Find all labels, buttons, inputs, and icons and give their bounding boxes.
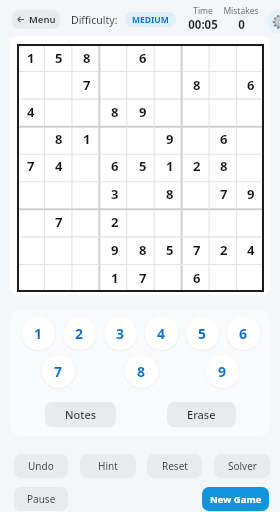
button[interactable]	[129, 180, 156, 208]
button[interactable]	[73, 236, 101, 264]
button[interactable]: 7	[17, 152, 45, 180]
button[interactable]: 9	[129, 98, 156, 125]
button[interactable]: Notes	[45, 402, 116, 427]
button[interactable]: Undo	[14, 454, 68, 478]
button[interactable]: 9	[237, 180, 264, 208]
button[interactable]	[45, 71, 73, 98]
button[interactable]: 1	[22, 317, 55, 350]
button[interactable]	[237, 44, 264, 71]
button[interactable]: 8	[129, 236, 156, 264]
button[interactable]	[129, 125, 156, 152]
button[interactable]	[156, 264, 183, 292]
button[interactable]: Hint	[80, 454, 136, 478]
button[interactable]	[101, 71, 129, 98]
button[interactable]: 8	[156, 180, 183, 208]
button[interactable]: 7	[183, 236, 210, 264]
button[interactable]	[237, 98, 264, 125]
button[interactable]	[17, 264, 45, 292]
button[interactable]: 7	[45, 208, 73, 236]
button[interactable]	[237, 152, 264, 180]
button[interactable]: 6	[183, 264, 210, 292]
button[interactable]: 7	[73, 71, 101, 98]
button[interactable]: Settings	[267, 10, 280, 33]
button[interactable]: 4	[237, 236, 264, 264]
button[interactable]: 8	[101, 98, 129, 125]
button[interactable]	[210, 208, 237, 236]
button[interactable]: Erase	[167, 402, 236, 427]
button[interactable]: 5	[156, 236, 183, 264]
button[interactable]	[73, 180, 101, 208]
button[interactable]	[210, 71, 237, 98]
button[interactable]	[73, 98, 101, 125]
button[interactable]: Reset	[147, 454, 202, 478]
button[interactable]	[156, 208, 183, 236]
button[interactable]: 6	[227, 317, 260, 350]
button[interactable]	[73, 264, 101, 292]
button[interactable]	[156, 71, 183, 98]
button[interactable]: 3	[101, 180, 129, 208]
button[interactable]	[237, 264, 264, 292]
button[interactable]	[17, 236, 45, 264]
button[interactable]	[129, 71, 156, 98]
button[interactable]	[237, 208, 264, 236]
button[interactable]: Menu	[12, 10, 60, 29]
button[interactable]	[183, 208, 210, 236]
button[interactable]	[45, 98, 73, 125]
button[interactable]: 6	[210, 125, 237, 152]
button[interactable]	[210, 44, 237, 71]
button[interactable]: 8	[125, 355, 158, 388]
button[interactable]: New Game	[202, 487, 269, 511]
button[interactable]: 2	[63, 317, 96, 350]
button[interactable]: 7	[129, 264, 156, 292]
button[interactable]: 9	[156, 125, 183, 152]
button[interactable]	[73, 208, 101, 236]
button[interactable]	[129, 208, 156, 236]
button[interactable]	[237, 125, 264, 152]
button[interactable]: 6	[237, 71, 264, 98]
button[interactable]: 5	[129, 152, 156, 180]
button[interactable]: 2	[210, 236, 237, 264]
button[interactable]: 5	[186, 317, 219, 350]
button[interactable]: 6	[101, 152, 129, 180]
button[interactable]	[210, 264, 237, 292]
button[interactable]: 7	[210, 180, 237, 208]
button[interactable]	[17, 125, 45, 152]
button[interactable]	[183, 180, 210, 208]
button[interactable]: Pause	[14, 487, 68, 511]
button[interactable]: 9	[101, 236, 129, 264]
button[interactable]	[17, 180, 45, 208]
button[interactable]: 3	[104, 317, 137, 350]
button[interactable]	[73, 152, 101, 180]
button[interactable]: 1	[156, 152, 183, 180]
button[interactable]: 4	[45, 152, 73, 180]
button[interactable]: 2	[101, 208, 129, 236]
button[interactable]: 1	[73, 125, 101, 152]
button[interactable]	[45, 264, 73, 292]
button[interactable]: Solver	[214, 454, 270, 478]
button[interactable]: MEDIUM	[125, 12, 176, 27]
button[interactable]: 4	[145, 317, 178, 350]
button[interactable]	[210, 98, 237, 125]
button[interactable]	[45, 236, 73, 264]
button[interactable]: 1	[17, 44, 45, 71]
button[interactable]	[45, 180, 73, 208]
button[interactable]: 9	[206, 355, 239, 388]
button[interactable]: 2	[183, 152, 210, 180]
button[interactable]: 8	[45, 125, 73, 152]
button[interactable]	[156, 44, 183, 71]
button[interactable]: 6	[129, 44, 156, 71]
button[interactable]: 5	[45, 44, 73, 71]
button[interactable]: 8	[210, 152, 237, 180]
button[interactable]	[183, 98, 210, 125]
button[interactable]	[101, 125, 129, 152]
button[interactable]: 7	[42, 355, 75, 388]
button[interactable]: 8	[183, 71, 210, 98]
button[interactable]: 1	[101, 264, 129, 292]
button[interactable]	[156, 98, 183, 125]
button[interactable]	[183, 125, 210, 152]
button[interactable]	[183, 44, 210, 71]
button[interactable]	[17, 71, 45, 98]
button[interactable]	[17, 208, 45, 236]
button[interactable]: 4	[17, 98, 45, 125]
button[interactable]: 8	[73, 44, 101, 71]
